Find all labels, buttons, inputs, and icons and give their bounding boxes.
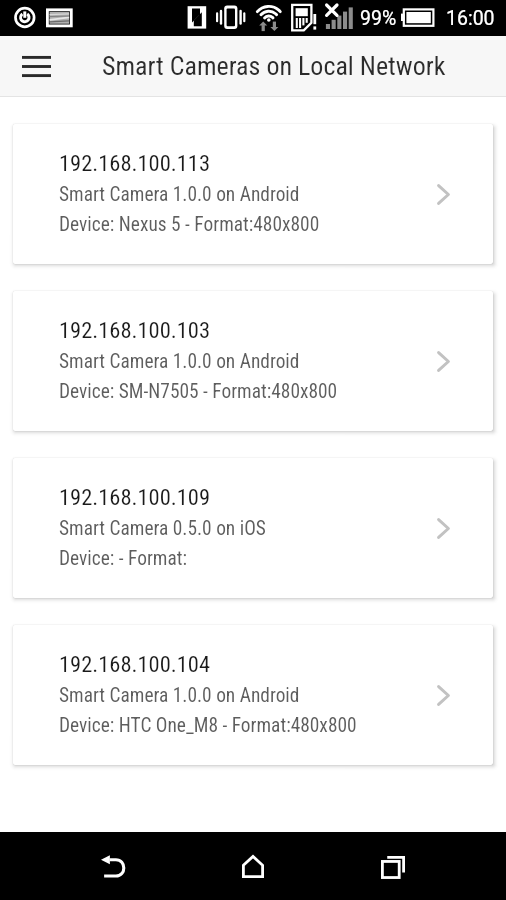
staticText: Smart Camera 1.0.0 on Android: [59, 183, 300, 206]
staticText: 192.168.100.113: [59, 150, 211, 176]
button[interactable]: Open navigation drawer: [10, 38, 62, 94]
staticText: 192.168.100.109: [59, 484, 211, 510]
button[interactable]: Back: [85, 838, 141, 894]
staticText: Smart Camera 1.0.0 on Android: [59, 684, 300, 707]
staticText: Smart Cameras on Local Network: [102, 51, 446, 81]
staticText: Device: - Format:: [59, 547, 187, 570]
button[interactable]: 192.168.100.109: [13, 458, 493, 598]
staticText: Device: HTC One_M8 - Format:480x800: [59, 714, 357, 737]
staticText: Smart Camera 0.5.0 on iOS: [59, 517, 266, 540]
staticText: 192.168.100.103: [59, 317, 211, 343]
staticText: Smart Camera 1.0.0 on Android: [59, 350, 300, 373]
staticText: 192.168.100.104: [59, 651, 211, 677]
button[interactable]: Home: [225, 838, 281, 894]
button[interactable]: 192.168.100.113: [13, 124, 493, 264]
staticText: Device: SM-N7505 - Format:480x800: [59, 380, 338, 403]
button[interactable]: Recent apps: [365, 838, 421, 894]
staticText: 16:00: [446, 7, 495, 30]
button[interactable]: 192.168.100.103: [13, 291, 493, 431]
button[interactable]: 192.168.100.104: [13, 625, 493, 765]
staticText: Device: Nexus 5 - Format:480x800: [59, 213, 320, 236]
staticText: 99%: [360, 7, 397, 30]
